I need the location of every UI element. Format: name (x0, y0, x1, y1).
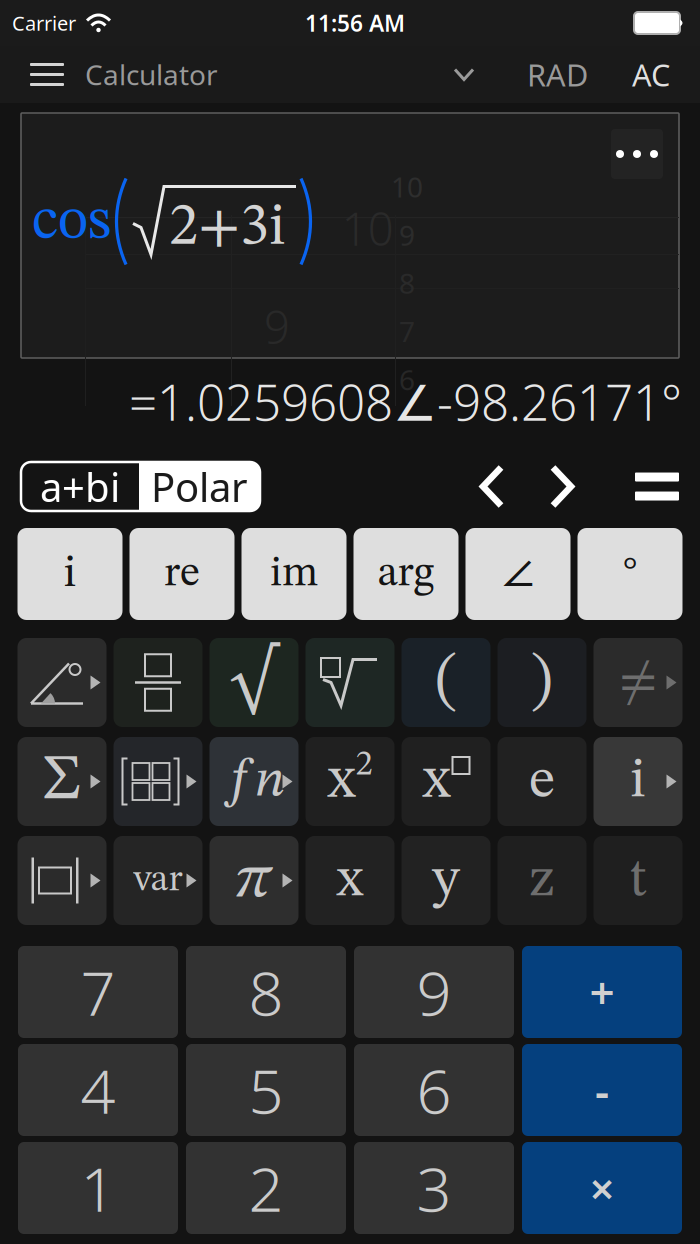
button[interactable]: Nth root (305, 638, 394, 727)
staticText: AC (632, 54, 670, 95)
staticText: 8 (248, 951, 283, 1033)
button[interactable]: 1 (18, 1142, 178, 1234)
button[interactable]: ° (577, 528, 682, 620)
button[interactable]: ( (401, 638, 490, 727)
button[interactable]: a+bi (21, 462, 260, 511)
staticText: ≠ (619, 656, 657, 709)
staticText: 6 (399, 361, 415, 398)
button[interactable]: x to the power (401, 737, 490, 826)
staticText: 9 (264, 296, 290, 356)
staticText: × (589, 1159, 614, 1217)
button[interactable]: More options (611, 129, 663, 179)
staticText: var (133, 862, 182, 899)
staticText: √ (229, 652, 278, 713)
staticText: re (164, 553, 200, 595)
button[interactable]: × (522, 1142, 682, 1234)
staticText: i (63, 551, 76, 597)
button[interactable]: 7 (18, 946, 178, 1038)
button[interactable]: Previous (472, 460, 512, 512)
staticText: arg (377, 553, 434, 595)
button[interactable]: t (593, 836, 682, 925)
staticText: 6 (416, 1049, 451, 1131)
staticText: x (422, 752, 450, 811)
staticText: 2+3i (169, 199, 286, 258)
button[interactable]: Absolute value (17, 836, 106, 925)
staticText: 2 (248, 1147, 283, 1229)
button[interactable]: y (401, 836, 490, 925)
button[interactable]: z (497, 836, 586, 925)
button[interactable]: + (522, 946, 682, 1038)
staticText: 10 (342, 198, 394, 258)
staticText: Calculator (85, 56, 218, 93)
staticText: 7 (80, 951, 115, 1033)
staticText: 7 (399, 313, 415, 350)
staticText: 9 (399, 216, 415, 253)
button[interactable]: e (497, 737, 586, 826)
button[interactable]: Fraction (113, 638, 202, 727)
button[interactable]: Calculate (632, 460, 682, 512)
staticText: 4 (80, 1049, 115, 1131)
staticText: ( (434, 650, 457, 714)
staticText: im (270, 553, 318, 595)
staticText: ° (622, 555, 637, 593)
staticText: z (529, 852, 555, 908)
staticText: RAD (527, 54, 588, 95)
staticText: y (432, 852, 459, 908)
staticText: x (327, 752, 355, 811)
staticText: t (629, 852, 647, 908)
button[interactable]: - (522, 1044, 682, 1136)
button[interactable]: ≠ (593, 638, 682, 727)
staticText: 𝜋 (234, 850, 273, 911)
button[interactable]: √ (209, 638, 298, 727)
button[interactable]: Menu (17, 47, 77, 101)
button[interactable]: i (593, 737, 682, 826)
button[interactable]: ) (497, 638, 586, 727)
staticText: + (589, 963, 614, 1021)
staticText: 10 (391, 168, 423, 205)
staticText: 3 (416, 1147, 451, 1229)
staticText: Polar (151, 460, 248, 513)
button[interactable]: 5 (186, 1044, 346, 1136)
staticText: i (630, 753, 646, 809)
button[interactable]: x squared (305, 737, 394, 826)
button[interactable]: var (113, 836, 202, 925)
button[interactable]: Angle (17, 638, 106, 727)
button[interactable]: re (129, 528, 234, 620)
button[interactable]: ∠ (465, 528, 570, 620)
button[interactable]: Matrix (113, 737, 202, 826)
button[interactable]: 2 (186, 1142, 346, 1234)
staticText: - (595, 1061, 609, 1119)
button[interactable]: AC (628, 42, 674, 107)
staticText: 𝑓𝑛 (223, 755, 284, 808)
button[interactable]: arg (353, 528, 458, 620)
button[interactable]: 8 (186, 946, 346, 1038)
button[interactable]: 6 (354, 1044, 514, 1136)
staticText: x (336, 852, 363, 908)
staticText: 9 (416, 951, 451, 1033)
staticText: 8 (399, 264, 415, 302)
staticText: =1.0259608∠-98.26171° (129, 369, 682, 434)
staticText: e (529, 753, 555, 809)
staticText: 2 (355, 748, 372, 783)
staticText: Σ (42, 749, 81, 813)
button[interactable]: 𝜋 (209, 836, 298, 925)
button[interactable]: History (437, 49, 491, 99)
staticText: ∠ (501, 551, 534, 597)
staticText: 11:56 AM (305, 8, 405, 38)
button[interactable]: x (305, 836, 394, 925)
staticText: Carrier (12, 10, 76, 36)
button[interactable]: 𝑓𝑛 (209, 737, 298, 826)
staticText: ) (530, 650, 553, 714)
button[interactable]: Σ (17, 737, 106, 826)
staticText: 5 (248, 1049, 283, 1131)
button[interactable]: 3 (354, 1142, 514, 1234)
button[interactable]: 4 (18, 1044, 178, 1136)
button[interactable]: RAD (523, 42, 592, 107)
staticText: 1 (80, 1147, 115, 1229)
staticText: a+bi (40, 460, 120, 513)
button[interactable]: i (17, 528, 122, 620)
button[interactable]: Next (542, 460, 582, 512)
button[interactable]: im (241, 528, 346, 620)
button[interactable]: 9 (354, 946, 514, 1038)
staticText: cos (32, 193, 111, 252)
